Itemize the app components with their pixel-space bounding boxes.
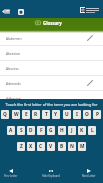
button[interactable]: Hide Keyboard xyxy=(35,169,67,178)
button[interactable]: I xyxy=(73,110,81,119)
button[interactable]: K xyxy=(78,126,86,135)
staticText: Q xyxy=(3,111,7,118)
button[interactable]: T xyxy=(42,110,50,119)
staticText: Hide Keyboard xyxy=(42,174,60,178)
button[interactable]: Adhesion xyxy=(0,91,103,106)
staticText: B xyxy=(60,143,64,150)
button[interactable]: U xyxy=(63,110,71,119)
staticText: Prev Letter xyxy=(4,174,18,178)
staticText: Adhesion xyxy=(6,96,21,101)
button[interactable]: L xyxy=(88,126,96,135)
button[interactable]: Z xyxy=(17,142,25,151)
button[interactable]: Abscess xyxy=(0,61,103,76)
staticText: A xyxy=(9,127,13,134)
staticText: U xyxy=(65,111,69,118)
button[interactable]: E xyxy=(22,110,30,119)
button[interactable]: Y xyxy=(52,110,60,119)
button[interactable]: V xyxy=(47,142,55,151)
button[interactable]: X xyxy=(27,142,35,151)
staticText: Back xyxy=(4,10,11,14)
staticText: T xyxy=(45,111,48,118)
button[interactable]: A xyxy=(7,126,15,135)
staticText: Abscess xyxy=(6,66,19,71)
button[interactable]: Abrasion xyxy=(0,46,103,61)
staticText: X xyxy=(29,143,33,150)
staticText: O xyxy=(85,111,89,118)
button[interactable]: Prev Letter xyxy=(0,169,27,178)
staticText: N xyxy=(70,143,74,150)
staticText: R xyxy=(34,111,38,118)
button[interactable]: Back xyxy=(2,9,11,14)
button[interactable]: D xyxy=(27,126,35,135)
staticText: Adenoids xyxy=(6,81,21,86)
staticText: Next Letter xyxy=(82,174,96,178)
button[interactable]: Adenoids xyxy=(0,76,103,91)
staticText: Abdomen xyxy=(6,36,22,41)
staticText: L xyxy=(91,127,94,134)
button[interactable]: B xyxy=(58,142,66,151)
staticText: K xyxy=(80,127,84,134)
button[interactable]: S xyxy=(17,126,25,135)
button[interactable]: W xyxy=(12,110,20,119)
button[interactable]: Q xyxy=(1,110,9,119)
staticText: H xyxy=(60,127,64,134)
button[interactable]: J xyxy=(68,126,76,135)
staticText: S xyxy=(20,127,23,134)
staticText: J xyxy=(71,127,73,134)
staticText: E xyxy=(25,111,28,118)
button[interactable]: C xyxy=(37,142,45,151)
button[interactable]: O xyxy=(83,110,91,119)
staticText: Z xyxy=(20,143,23,150)
staticText: G xyxy=(49,127,53,134)
staticText: D xyxy=(29,127,33,134)
staticText: Abrasion xyxy=(6,51,21,56)
button[interactable]: G xyxy=(47,126,55,135)
button[interactable]: R xyxy=(32,110,40,119)
staticText: P xyxy=(96,111,99,118)
staticText: C xyxy=(39,143,43,150)
staticText: Touch the first letter of the term you a… xyxy=(0,102,103,107)
staticText: Y xyxy=(54,111,58,118)
button[interactable]: F xyxy=(37,126,45,135)
button[interactable]: Abdomen xyxy=(0,31,103,46)
button[interactable]: Home xyxy=(18,9,24,15)
button[interactable]: P xyxy=(93,110,101,119)
staticText: I xyxy=(76,111,78,118)
button[interactable]: H xyxy=(58,126,66,135)
button[interactable]: Next Letter xyxy=(73,169,103,178)
button[interactable]: M xyxy=(78,142,86,151)
staticText: F xyxy=(40,127,43,134)
staticText: Glossary xyxy=(43,20,62,26)
staticText: M xyxy=(80,143,85,150)
staticText: V xyxy=(49,143,53,150)
button[interactable]: N xyxy=(68,142,76,151)
staticText: W xyxy=(14,111,19,118)
